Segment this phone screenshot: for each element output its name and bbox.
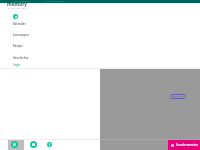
button[interactable]: Geschichte	[13, 53, 53, 63]
staticText: Kalender	[13, 22, 26, 26]
staticText: Termin vereinbaren	[45, 0, 65, 3]
staticText: +49 30 1234 5678	[12, 0, 30, 3]
button[interactable]: Kundenservice	[168, 140, 200, 150]
button[interactable]: Termine	[30, 141, 37, 148]
staticText: EYECENTER	[8, 7, 28, 10]
staticText: Mehr Infos	[172, 95, 184, 98]
button[interactable]: Kalender	[13, 19, 53, 29]
staticText: Login	[13, 63, 21, 67]
button[interactable]: Login	[13, 60, 53, 70]
staticText: Leistungen	[13, 33, 29, 37]
button[interactable]: Leistungen	[13, 30, 53, 40]
staticText: Geschichte	[13, 56, 29, 60]
button[interactable]: Rezept	[13, 41, 53, 51]
button[interactable]: Mehr Infos	[170, 94, 186, 99]
button[interactable]: Home	[11, 141, 18, 148]
button[interactable]: Profil	[13, 14, 18, 19]
staticText: memory	[7, 1, 28, 8]
staticText: Rezept	[13, 44, 23, 48]
staticText: Kundenservice	[176, 143, 199, 147]
button[interactable]: Info	[47, 142, 52, 147]
